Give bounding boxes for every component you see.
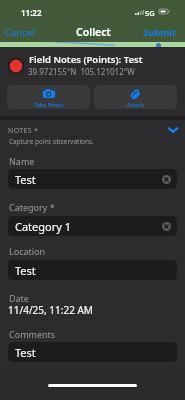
staticText: 39.972155°N 105.121012°W <box>28 66 135 77</box>
staticText: Cancel <box>5 26 35 39</box>
staticText: Test <box>15 345 171 360</box>
button[interactable]: Category 1 <box>8 216 177 236</box>
staticText: NOTES * <box>8 126 39 136</box>
staticText: Field Notes (Points): Test <box>29 53 143 66</box>
button[interactable]: Test <box>8 169 177 189</box>
staticText: Category * <box>9 201 55 213</box>
button[interactable]: Test <box>8 342 177 362</box>
button[interactable]: Test <box>8 260 177 280</box>
button[interactable]: NOTES * <box>0 121 185 149</box>
button[interactable]: Attach <box>94 85 177 109</box>
staticText: Location <box>9 245 46 257</box>
staticText: Take Photo <box>34 101 64 108</box>
other: Collapse section <box>168 127 178 133</box>
staticText: Name <box>9 155 35 167</box>
staticText: Test <box>15 172 162 187</box>
staticText: Collect <box>76 25 111 39</box>
staticText: 5G <box>145 8 155 18</box>
staticText: Category 1 <box>15 219 162 234</box>
button[interactable]: Cancel <box>0 23 42 42</box>
staticText: Test <box>15 263 171 278</box>
staticText: Date <box>9 292 29 304</box>
staticText: 11/4/25, 11:22 AM <box>8 303 93 317</box>
staticText: Attach <box>127 101 145 108</box>
staticText: 11:22 <box>21 7 42 18</box>
button[interactable]: Take Photo <box>7 85 90 109</box>
staticText: Comments <box>9 328 56 340</box>
button[interactable]: Submit <box>136 23 185 42</box>
staticText: Capture point observations. <box>9 137 94 146</box>
staticText: Submit <box>143 26 176 39</box>
